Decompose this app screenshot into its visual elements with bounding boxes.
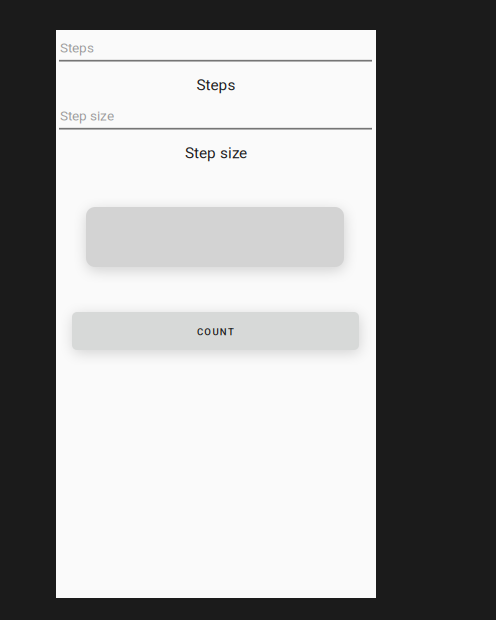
button[interactable]: Steps bbox=[56, 30, 376, 62]
staticText: Step size bbox=[60, 108, 114, 124]
staticText: Steps bbox=[60, 40, 94, 56]
staticText: COUNT bbox=[197, 326, 234, 338]
button[interactable]: COUNT bbox=[72, 312, 359, 350]
staticText: Steps bbox=[196, 76, 235, 94]
button[interactable]: Step size bbox=[56, 98, 376, 130]
staticText: Step size bbox=[185, 144, 247, 162]
